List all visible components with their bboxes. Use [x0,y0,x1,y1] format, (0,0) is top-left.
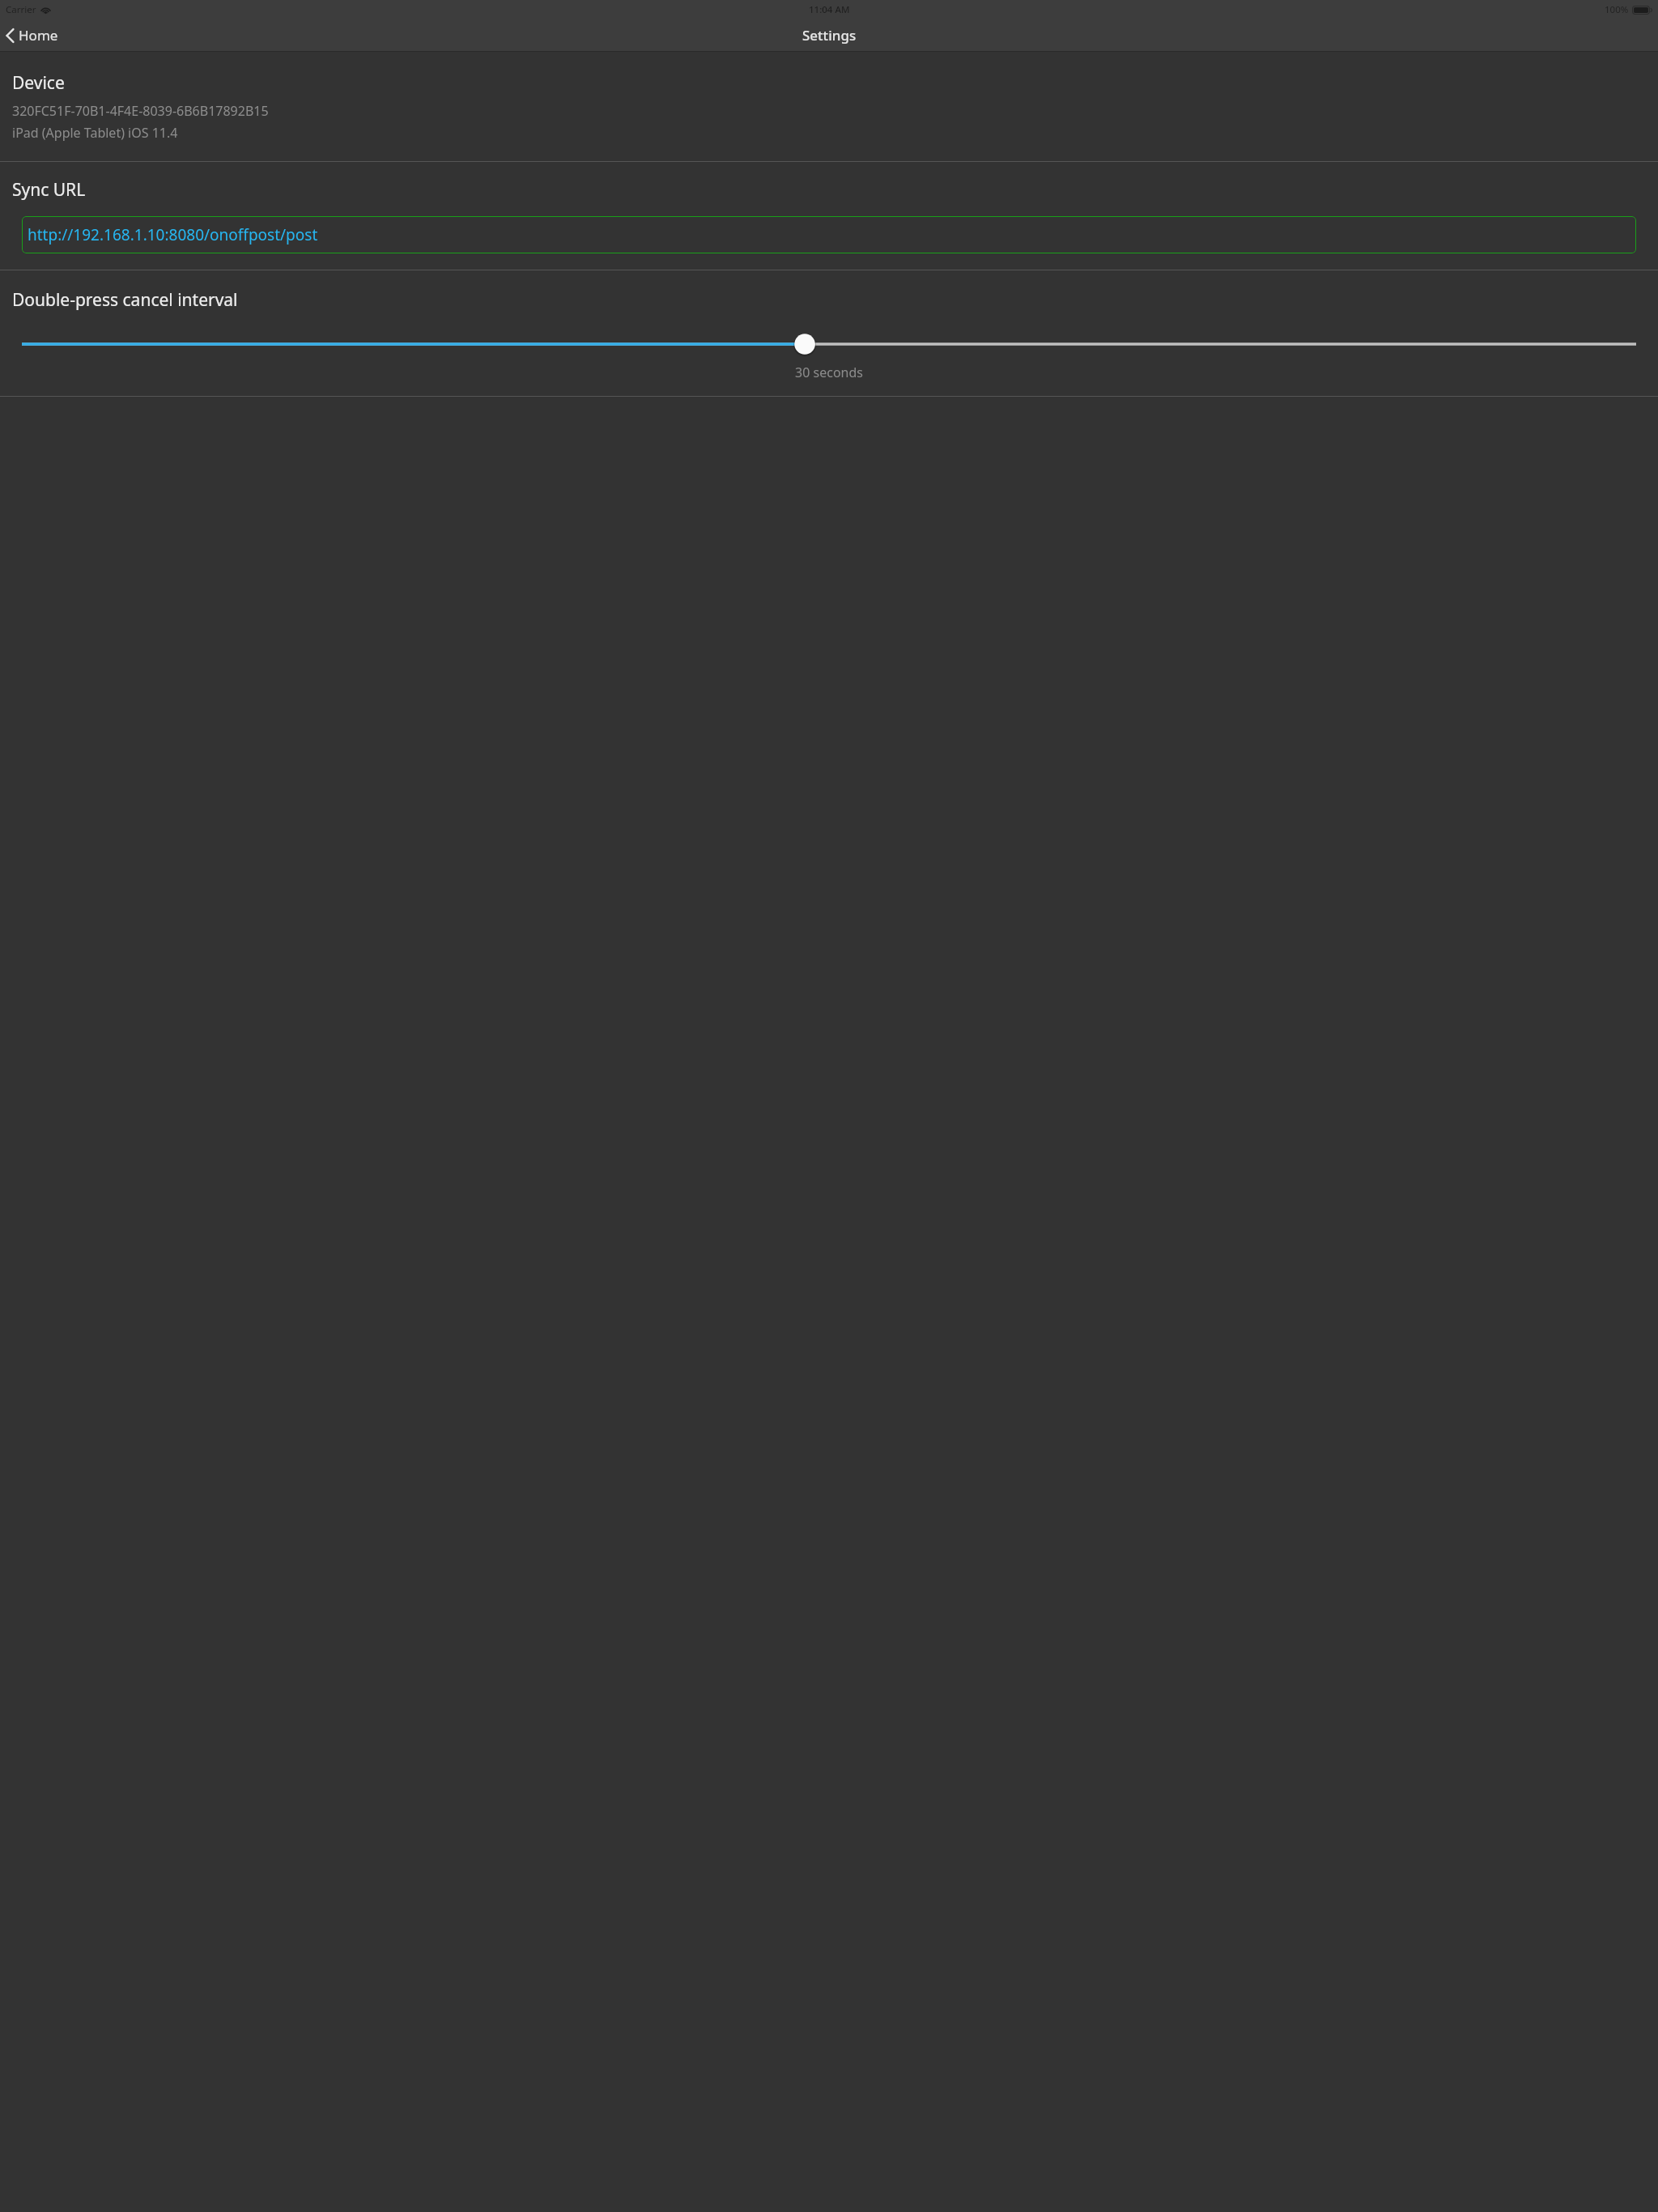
staticText: Home [19,26,58,45]
staticText: 30 seconds [0,364,1658,381]
staticText: 11:04 AM [809,3,850,16]
staticText: Double-press cancel interval [12,288,238,312]
staticText: Device [12,71,65,95]
staticText: Settings [802,26,857,45]
button[interactable]: Double-press cancel interval slider [22,331,1636,357]
staticText: Carrier [6,3,36,16]
staticText: Sync URL [12,178,86,202]
staticText: iPad (Apple Tablet) iOS 11.4 [12,124,178,142]
staticText: 100% [1605,3,1629,16]
staticText: 320FC51F-70B1-4F4E-8039-6B6B17892B15 [12,102,269,120]
button[interactable]: Home [0,23,68,48]
button[interactable]: http://192.168.1.10:8080/onoffpost/post [22,216,1636,253]
staticText: http://192.168.1.10:8080/onoffpost/post [28,224,318,245]
